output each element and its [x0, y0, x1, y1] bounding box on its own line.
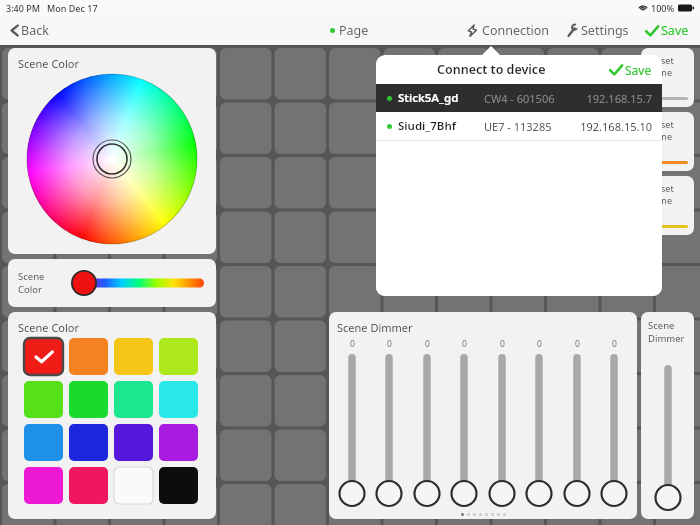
button[interactable]: 0 [447, 338, 481, 507]
staticText: 192.168.15.7 [580, 91, 652, 106]
button[interactable]: Preset [641, 112, 694, 171]
button[interactable] [69, 338, 108, 375]
button[interactable]: Preset [641, 48, 694, 107]
button[interactable]: Scene [8, 259, 216, 307]
staticText: 0 [500, 338, 505, 350]
button[interactable] [24, 381, 63, 418]
staticText: 0 [537, 338, 542, 350]
staticText: 0 [350, 338, 355, 350]
button[interactable]: Save [642, 19, 692, 42]
button[interactable]: Siudi_7Bhf [376, 112, 662, 140]
staticText: Scene [647, 194, 672, 206]
staticText: Scene Dimmer [337, 320, 413, 335]
button[interactable]: 0 [372, 338, 406, 507]
button[interactable] [24, 424, 63, 461]
staticText: Connection [482, 22, 549, 39]
staticText: Preset [647, 182, 674, 194]
staticText: 0 [612, 338, 617, 350]
button[interactable]: 0 [485, 338, 519, 507]
staticText: Page [339, 22, 369, 39]
staticText: Preset [647, 54, 674, 66]
button[interactable]: Scene Color [8, 48, 216, 254]
button[interactable] [159, 467, 198, 504]
button[interactable]: Scene [641, 312, 694, 519]
button[interactable] [69, 467, 108, 504]
staticText: 0 [387, 338, 392, 350]
staticText: Dimmer [648, 332, 685, 345]
staticText: 100% [651, 2, 675, 14]
button[interactable] [114, 381, 153, 418]
button[interactable]: Page [330, 22, 369, 39]
button[interactable]: Settings [562, 19, 632, 42]
other: Settings [565, 24, 578, 37]
other: Connection [466, 24, 479, 37]
staticText: Siudi_7Bhf [398, 118, 484, 134]
staticText: Settings [581, 22, 629, 39]
other: Save [645, 25, 659, 37]
button[interactable] [114, 424, 153, 461]
staticText: CW4 - 601506 [484, 91, 580, 106]
button[interactable]: 0 [410, 338, 444, 507]
staticText: Scene Color [18, 320, 80, 335]
button[interactable]: Back [8, 18, 51, 43]
staticText: 192.168.15.10 [580, 119, 652, 134]
staticText: 0 [462, 338, 467, 350]
staticText: Scene Color [18, 56, 80, 71]
staticText: Color [18, 283, 42, 296]
button[interactable] [24, 338, 63, 375]
button[interactable] [69, 381, 108, 418]
button[interactable] [159, 381, 198, 418]
staticText: Connect to device [437, 61, 546, 78]
button[interactable] [69, 424, 108, 461]
staticText: Scene [648, 319, 675, 332]
staticText: 0 [425, 338, 430, 350]
button[interactable]: Stick5A_gd [376, 84, 662, 112]
staticText: 3:40 PM Mon Dec 17 [6, 2, 98, 14]
other: Save [609, 64, 623, 76]
button[interactable] [159, 338, 198, 375]
button[interactable] [24, 467, 63, 504]
button[interactable]: 0 [522, 338, 556, 507]
staticText: UE7 - 113285 [484, 119, 580, 134]
button[interactable]: Scene Dimmer [329, 312, 637, 519]
button[interactable] [159, 424, 198, 461]
staticText: 0 [575, 338, 580, 350]
button[interactable]: Connection [463, 19, 552, 42]
staticText: Scene [647, 130, 672, 142]
button[interactable] [114, 338, 153, 375]
staticText: Save [625, 62, 652, 78]
staticText: Save [661, 22, 689, 39]
button[interactable]: 0 [597, 338, 631, 507]
staticText: Back [21, 22, 49, 39]
staticText: Scene [647, 66, 672, 78]
button[interactable]: 0 [335, 338, 369, 507]
button[interactable]: Save [609, 62, 652, 78]
button[interactable]: Scene Color [8, 312, 216, 519]
button[interactable] [114, 467, 153, 504]
button[interactable]: Preset [641, 176, 694, 235]
staticText: Stick5A_gd [398, 90, 484, 106]
staticText: Preset [647, 118, 674, 130]
button[interactable]: 0 [560, 338, 594, 507]
staticText: Scene [18, 270, 45, 283]
